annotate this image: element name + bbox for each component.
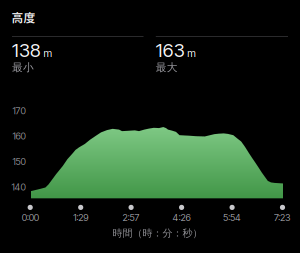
staticText: 0:00 xyxy=(22,212,39,223)
staticText: 最大 xyxy=(156,61,178,74)
staticText: 163 xyxy=(156,39,185,61)
staticText: 高度 xyxy=(11,9,35,26)
staticText: 160 xyxy=(12,131,25,142)
staticText: 2:57 xyxy=(123,212,140,223)
staticText: 150 xyxy=(12,156,25,167)
staticText: 最小 xyxy=(12,61,34,74)
staticText: 5:54 xyxy=(223,212,241,223)
staticText: 1:29 xyxy=(73,212,88,223)
staticText: 7:23 xyxy=(274,212,291,223)
staticText: m xyxy=(187,47,196,59)
staticText: 138 xyxy=(12,39,41,61)
staticText: 170 xyxy=(12,105,25,116)
button[interactable]: 163 xyxy=(156,0,288,253)
staticText: 時間（時：分：秒） xyxy=(112,227,202,239)
staticText: 140 xyxy=(11,181,25,193)
staticText: 4:26 xyxy=(173,212,191,223)
button[interactable]: 138 xyxy=(12,0,143,253)
staticText: m xyxy=(43,47,52,59)
